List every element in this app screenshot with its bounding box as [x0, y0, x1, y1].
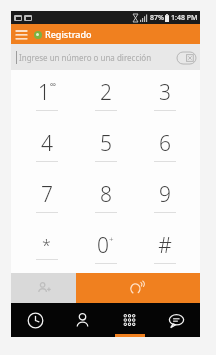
staticText: 4 [41, 129, 53, 158]
staticText: 0 [97, 231, 109, 260]
button[interactable]: 7 [17, 171, 76, 222]
button[interactable]: Dialpad [106, 303, 153, 337]
staticText: 3 [159, 78, 171, 107]
staticText: # [158, 231, 172, 260]
button[interactable]: # [135, 222, 194, 273]
staticText: 6 [159, 129, 171, 158]
button[interactable]: 2 [76, 70, 135, 120]
button[interactable]: 3 [135, 70, 194, 120]
staticText: 1 [38, 78, 50, 107]
button[interactable]: Open navigation menu [11, 24, 31, 44]
staticText: 8 [100, 180, 112, 209]
staticText: 9 [159, 180, 171, 209]
staticText: Registrado [45, 28, 92, 40]
staticText: ∞ [50, 80, 56, 89]
button[interactable]: Recent calls [11, 303, 59, 337]
staticText: + [109, 233, 114, 244]
button[interactable]: Add contact [11, 273, 76, 303]
staticText: 7 [41, 180, 53, 209]
button[interactable]: 5 [76, 120, 135, 171]
staticText: 87% [150, 13, 164, 23]
button[interactable]: Contacts [59, 303, 106, 337]
button[interactable]: 6 [135, 120, 194, 171]
button[interactable]: 0 [76, 222, 135, 273]
button[interactable]: 1 [17, 70, 76, 120]
staticText: 2 [100, 78, 112, 107]
staticText: 1:48 PM [171, 13, 198, 23]
staticText: Ingrese un número o una dirección [19, 52, 152, 63]
button[interactable]: 9 [135, 171, 194, 222]
button[interactable]: * [17, 222, 76, 273]
button[interactable]: Call [76, 273, 200, 303]
button[interactable]: 8 [76, 171, 135, 222]
staticText: 5 [100, 129, 112, 158]
button[interactable]: Clear input [177, 52, 196, 64]
staticText: * [42, 234, 51, 256]
button[interactable]: Messages [153, 303, 200, 337]
button[interactable]: Ingrese un número o una dirección [11, 44, 200, 70]
button[interactable]: 4 [17, 120, 76, 171]
